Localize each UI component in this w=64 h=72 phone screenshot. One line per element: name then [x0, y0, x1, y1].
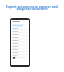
staticText: Expert resources to answer and diagnose … [4, 4, 60, 11]
button[interactable] [10, 18, 30, 67]
